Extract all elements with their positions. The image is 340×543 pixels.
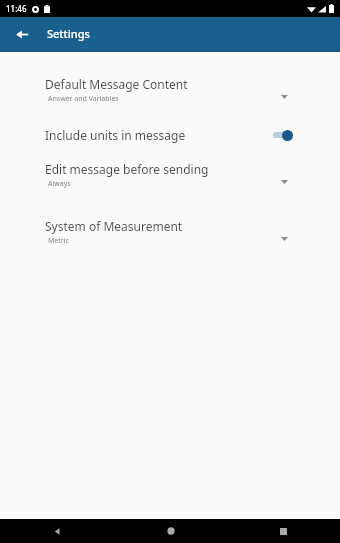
other: Expand options (279, 177, 289, 187)
other: Expand options (279, 234, 289, 244)
button[interactable]: Back (0, 519, 114, 543)
button[interactable]: Home (114, 519, 227, 543)
button[interactable]: Edit message before sending (0, 156, 340, 193)
button[interactable]: Default Message Content (0, 71, 340, 108)
staticText: Include units in message (45, 127, 186, 143)
staticText: 11:46 (6, 3, 27, 14)
staticText: Default Message Content (45, 76, 188, 92)
button[interactable]: System of Measurement (0, 213, 340, 250)
staticText: Always (48, 179, 71, 189)
staticText: Metric (48, 236, 69, 246)
button[interactable]: Include units in message (0, 121, 340, 149)
button[interactable]: Back (8, 20, 36, 48)
other: Expand options (279, 92, 289, 102)
staticText: Settings (47, 26, 90, 41)
staticText: Answer and Variables (48, 94, 119, 104)
staticText: Edit message before sending (45, 161, 209, 177)
button[interactable]: Recent apps (227, 519, 340, 543)
staticText: System of Measurement (45, 218, 183, 234)
